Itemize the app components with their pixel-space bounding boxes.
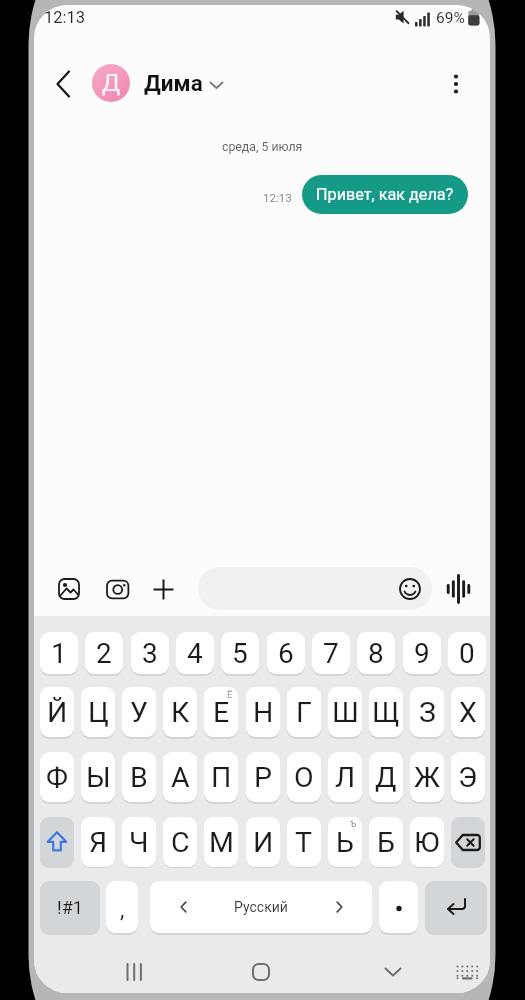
staticText: ,	[120, 897, 125, 923]
button[interactable]: Ц	[81, 687, 115, 737]
button[interactable]: Русский	[150, 881, 372, 933]
staticText: 12:13	[263, 191, 292, 204]
staticText: Й	[47, 696, 68, 729]
button[interactable]: О	[287, 752, 321, 802]
button[interactable]	[442, 67, 470, 101]
staticText: 69%	[436, 9, 465, 27]
button[interactable]: Е	[204, 687, 238, 737]
staticText: А	[171, 761, 190, 794]
button[interactable]	[455, 964, 480, 981]
button[interactable]: Д	[92, 64, 130, 102]
button[interactable]: 0	[448, 632, 486, 674]
button[interactable]	[379, 881, 418, 933]
staticText: 6	[278, 637, 294, 670]
staticText: 1	[51, 637, 67, 670]
staticText: Ч	[129, 826, 149, 859]
button[interactable]: Э	[451, 752, 485, 802]
staticText: среда, 5 июля	[222, 140, 303, 154]
button[interactable]	[446, 575, 473, 603]
button[interactable]	[384, 967, 402, 977]
button[interactable]	[51, 69, 77, 99]
button[interactable]: Ж	[410, 752, 444, 802]
staticText: И	[253, 826, 274, 859]
staticText: 9	[414, 637, 430, 670]
button[interactable]: Я	[81, 817, 115, 867]
staticText: З	[419, 696, 436, 729]
staticText: 2	[96, 637, 112, 670]
button[interactable]: 3	[131, 632, 169, 674]
staticText: Р	[254, 761, 272, 794]
button[interactable]: Б	[369, 817, 403, 867]
button[interactable]: А	[163, 752, 197, 802]
button[interactable]: Т	[287, 817, 321, 867]
button[interactable]	[40, 817, 74, 867]
button[interactable]: 7	[312, 632, 350, 674]
button[interactable]: З	[410, 687, 444, 737]
button[interactable]: 8	[357, 632, 395, 674]
staticText: !#1	[57, 897, 83, 918]
staticText: 5	[232, 637, 248, 670]
staticText: Русский	[234, 899, 288, 915]
button[interactable]: У	[122, 687, 156, 737]
button[interactable]: Ь	[328, 817, 362, 867]
button[interactable]	[425, 881, 487, 933]
button[interactable]: 2	[85, 632, 123, 674]
button[interactable]: Ч	[122, 817, 156, 867]
button[interactable]: Ш	[328, 687, 362, 737]
button[interactable]: Дима	[138, 65, 238, 101]
button[interactable]: П	[204, 752, 238, 802]
button[interactable]	[153, 579, 174, 600]
button[interactable]: Щ	[369, 687, 403, 737]
staticText: Ы	[86, 761, 111, 794]
button[interactable]	[252, 963, 270, 981]
button[interactable]: Ю	[410, 817, 444, 867]
button[interactable]: 9	[403, 632, 441, 674]
button[interactable]: С	[163, 817, 197, 867]
staticText: Г	[296, 696, 312, 729]
staticText: Л	[335, 761, 356, 794]
button[interactable]: Л	[328, 752, 362, 802]
staticText: Дима	[144, 70, 203, 96]
button[interactable]: Привет, как дела?	[302, 175, 468, 214]
button[interactable]: ,	[106, 881, 138, 933]
button[interactable]: Х	[451, 687, 485, 737]
staticText: 8	[368, 637, 384, 670]
staticText: С	[171, 826, 190, 859]
staticText: Ш	[332, 696, 359, 729]
staticText: М	[209, 826, 234, 859]
button[interactable]	[198, 567, 432, 610]
button[interactable]: !#1	[40, 881, 100, 933]
button[interactable]: 6	[267, 632, 305, 674]
button[interactable]: К	[163, 687, 197, 737]
button[interactable]: Г	[287, 687, 321, 737]
button[interactable]: Н	[246, 687, 280, 737]
button[interactable]: М	[204, 817, 238, 867]
button[interactable]: Й	[40, 687, 74, 737]
button[interactable]: Ф	[40, 752, 74, 802]
staticText: 12:13	[44, 8, 86, 27]
button[interactable]: 1	[40, 632, 78, 674]
button[interactable]: И	[246, 817, 280, 867]
staticText: Ц	[88, 696, 109, 729]
staticText: 4	[187, 637, 203, 670]
button[interactable]: Ы	[81, 752, 115, 802]
staticText: Д	[102, 69, 121, 97]
button[interactable]	[58, 578, 80, 600]
staticText: Д	[375, 761, 397, 794]
button[interactable]: В	[122, 752, 156, 802]
button[interactable]	[124, 962, 145, 982]
button[interactable]: 4	[176, 632, 214, 674]
staticText: Э	[458, 761, 478, 794]
staticText: Е	[213, 696, 230, 729]
staticText: Ю	[414, 826, 440, 859]
button[interactable]: Р	[246, 752, 280, 802]
staticText: ъ	[350, 818, 357, 830]
staticText: Ь	[336, 826, 354, 859]
staticText: Я	[89, 826, 108, 859]
button[interactable]	[106, 579, 130, 600]
staticText: Щ	[372, 696, 400, 729]
button[interactable]: Д	[369, 752, 403, 802]
button[interactable]	[451, 817, 485, 867]
button[interactable]: 5	[221, 632, 259, 674]
staticText: 3	[142, 637, 158, 670]
